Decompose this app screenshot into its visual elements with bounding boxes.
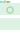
staticText: Today bbox=[0, 0, 10, 4]
